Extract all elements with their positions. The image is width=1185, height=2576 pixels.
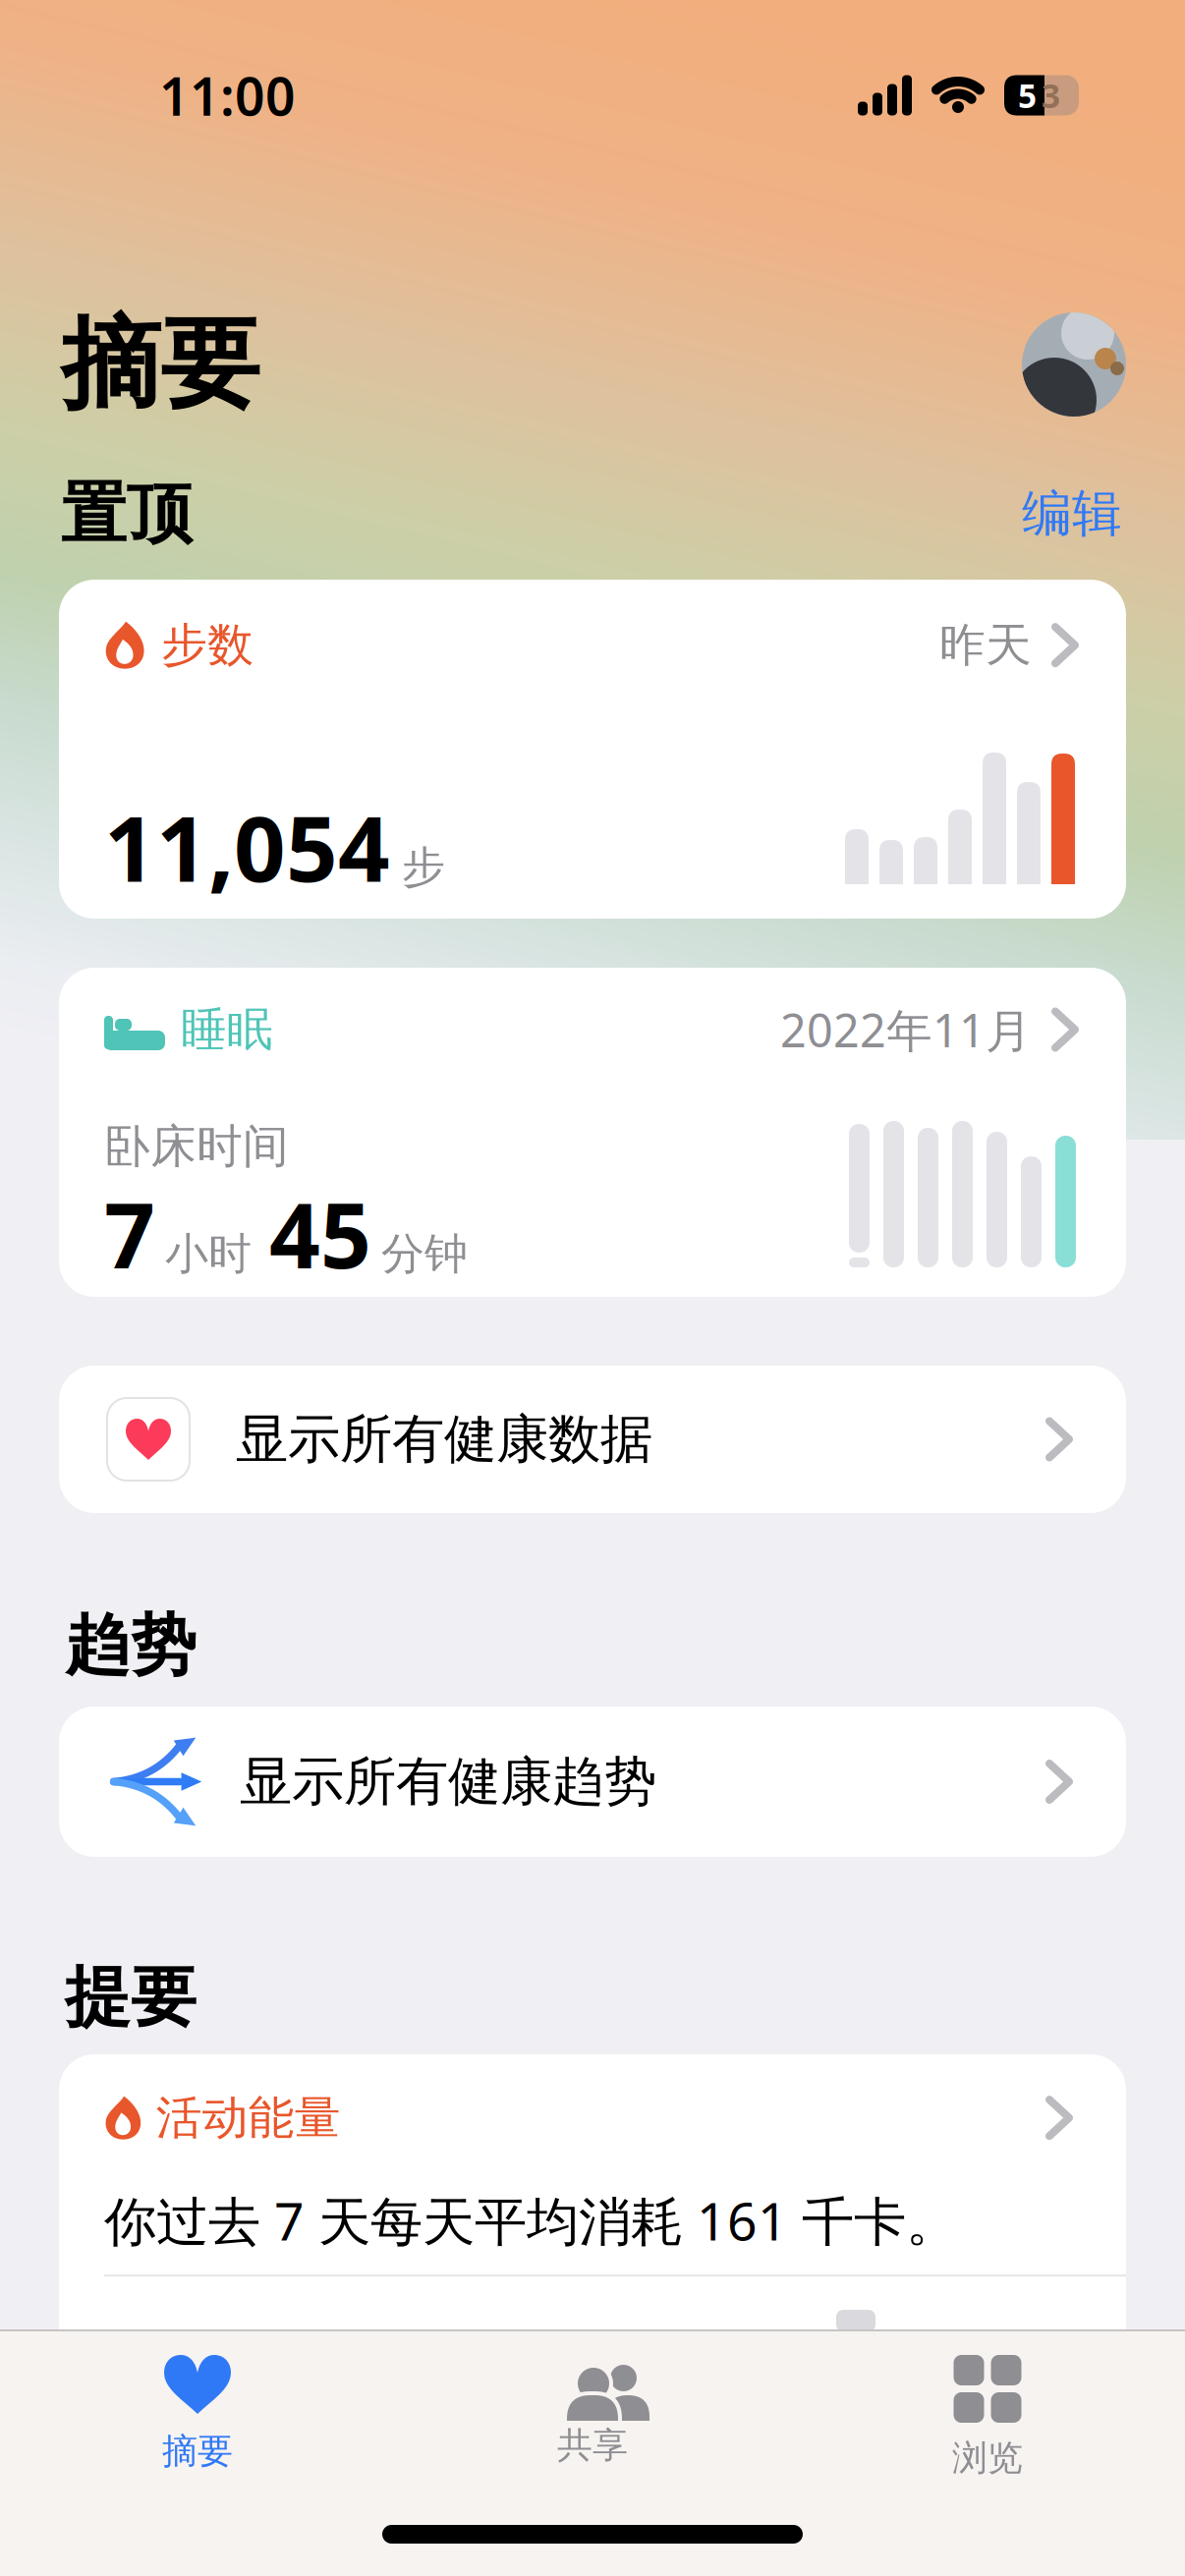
staticText: 7 [104, 1175, 155, 1293]
staticText: 提要 [65, 1957, 197, 2038]
staticText: 显示所有健康数据 [236, 1407, 652, 1471]
button[interactable]: 共享 [395, 2355, 790, 2467]
button[interactable]: 显示所有健康趋势 [0, 1707, 1185, 1857]
button[interactable]: 显示所有健康数据 [0, 1366, 1185, 1513]
button[interactable]: 睡眠 [0, 968, 1185, 1297]
staticText: 小时 [165, 1227, 252, 1280]
staticText: 2022年11月 [780, 999, 1032, 1060]
staticText: 共享 [557, 2424, 628, 2467]
staticText: 睡眠 [181, 1001, 273, 1058]
staticText: 5 [1018, 74, 1037, 117]
staticText: 显示所有健康趋势 [240, 1749, 656, 1814]
staticText: 步 [402, 841, 445, 894]
staticText: 摘要 [61, 303, 259, 426]
staticText: 趋势 [65, 1605, 197, 1686]
staticText: 分钟 [381, 1227, 468, 1280]
staticText: 11:00 [159, 61, 296, 130]
button[interactable]: 浏览 [790, 2355, 1185, 2480]
button[interactable]: 编辑 [1022, 483, 1122, 544]
button[interactable]: 摘要 [0, 2355, 395, 2473]
staticText: 45 [269, 1175, 371, 1293]
staticText: 步数 [161, 617, 254, 673]
staticText: 3 [1042, 74, 1060, 117]
staticText: 昨天 [939, 617, 1032, 673]
staticText: 摘要 [162, 2430, 233, 2473]
staticText: 你过去 7 天每天平均消耗 161 千卡。 [104, 2185, 958, 2255]
button[interactable]: 步数 [0, 580, 1185, 919]
button[interactable]: 活动能量 [0, 2054, 1185, 2576]
staticText: 浏览 [952, 2436, 1023, 2480]
staticText: 11,054 [104, 787, 390, 907]
button[interactable]: 个人资料 [1022, 312, 1126, 417]
staticText: 置顶 [61, 474, 193, 554]
staticText: 编辑 [1022, 483, 1122, 544]
staticText: 卧床时间 [104, 1118, 289, 1175]
staticText: 活动能量 [156, 2090, 341, 2146]
